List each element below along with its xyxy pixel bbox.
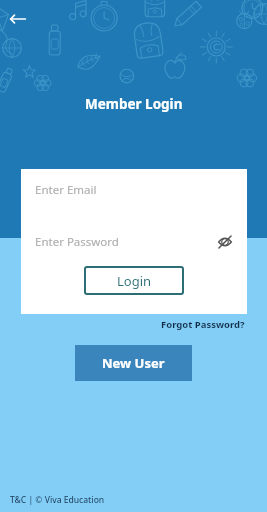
staticText: T&C | © Viva Education [10,494,105,506]
staticText: Member Login [85,95,183,113]
button[interactable]: Back [8,9,28,29]
button[interactable]: T&C | © Viva Education [10,494,105,506]
staticText: Forgot Password? [161,318,245,331]
staticText: Enter Password [35,234,215,250]
staticText: Enter Email [35,182,97,198]
staticText: New User [102,354,165,372]
button[interactable]: Login [84,266,184,295]
button[interactable]: New User [75,345,192,381]
staticText: Login [117,272,152,290]
button[interactable]: Enter Email [35,169,233,211]
button[interactable]: Show password [215,232,235,252]
button[interactable]: Forgot Password? [159,316,247,333]
button[interactable]: Enter Password [35,227,235,257]
